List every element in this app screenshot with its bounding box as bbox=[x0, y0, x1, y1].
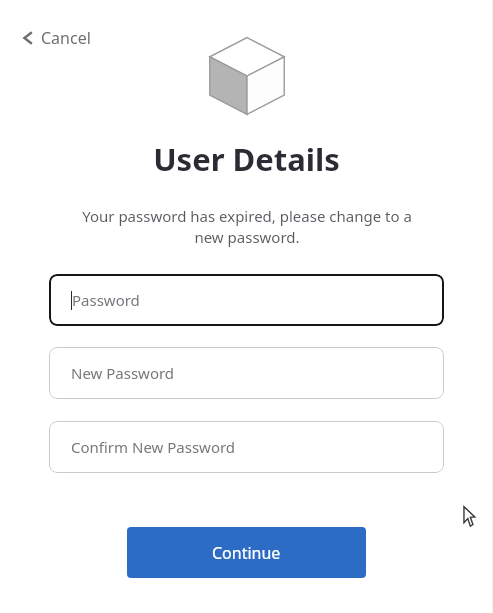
button[interactable]: Cancel bbox=[16, 23, 97, 53]
button[interactable]: Password bbox=[49, 274, 444, 326]
staticText: Continue bbox=[212, 542, 281, 564]
button[interactable]: Confirm New Password bbox=[49, 421, 444, 473]
staticText: Cancel bbox=[41, 27, 91, 49]
staticText: Password bbox=[72, 290, 140, 310]
staticText: Confirm New Password bbox=[71, 437, 236, 457]
button[interactable]: New Password bbox=[49, 347, 444, 399]
staticText: User Details bbox=[153, 138, 340, 180]
button[interactable]: Continue bbox=[127, 527, 366, 578]
staticText: Your password has expired, please change… bbox=[69, 206, 425, 248]
staticText: New Password bbox=[71, 363, 175, 383]
